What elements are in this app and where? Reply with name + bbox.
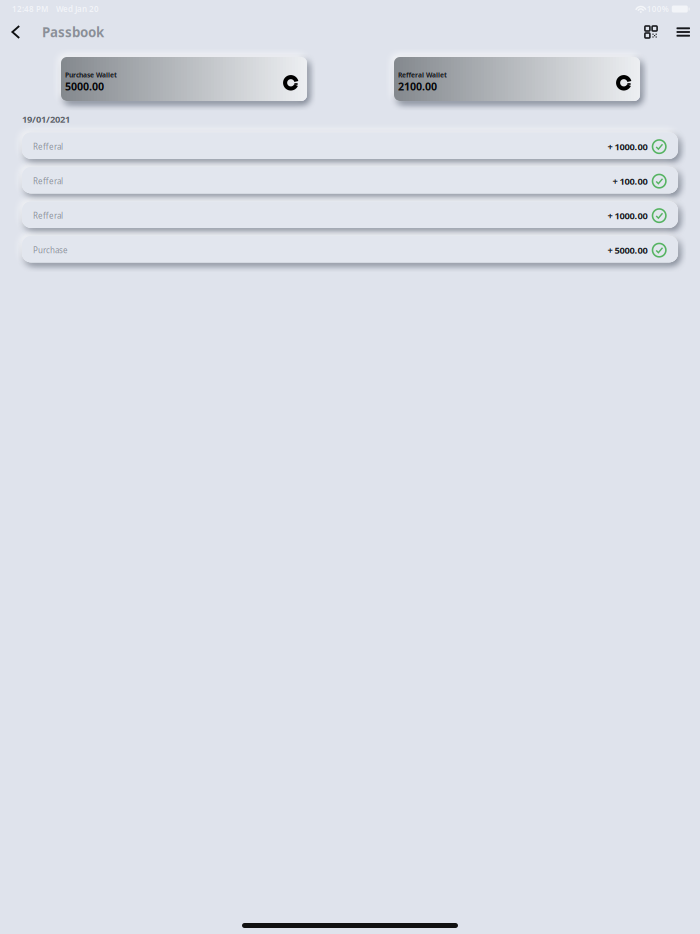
staticText: + 1000.00 <box>607 209 647 222</box>
staticText: Refferal <box>33 176 63 186</box>
staticText: Wed Jan 20 <box>56 4 99 14</box>
staticText: Passbook <box>42 23 104 41</box>
staticText: Purchase <box>33 245 68 255</box>
button[interactable]: Refferal <box>22 167 678 193</box>
button[interactable]: Purchase <box>22 236 678 262</box>
button[interactable]: Scan QR code <box>637 19 664 45</box>
staticText: 5000.00 <box>65 79 104 93</box>
staticText: Purchase Wallet <box>65 70 117 79</box>
staticText: 100% <box>647 4 669 14</box>
button[interactable]: Menu <box>669 20 697 44</box>
staticText: + 5000.00 <box>607 244 647 256</box>
button[interactable]: Refferal Wallet <box>394 57 640 101</box>
staticText: Refferal Wallet <box>398 70 447 79</box>
button[interactable]: Purchase Wallet <box>61 57 307 101</box>
staticText: + 1000.00 <box>607 140 647 153</box>
staticText: 2100.00 <box>398 79 437 93</box>
button[interactable]: Back <box>5 20 26 44</box>
staticText: Refferal <box>33 141 63 152</box>
button[interactable]: Refferal <box>22 132 678 159</box>
staticText: 19/01/2021 <box>22 113 70 125</box>
staticText: 12:48 PM <box>12 4 48 14</box>
staticText: + 100.00 <box>612 175 647 187</box>
button[interactable]: Refferal <box>22 201 678 228</box>
staticText: Refferal <box>33 210 63 221</box>
